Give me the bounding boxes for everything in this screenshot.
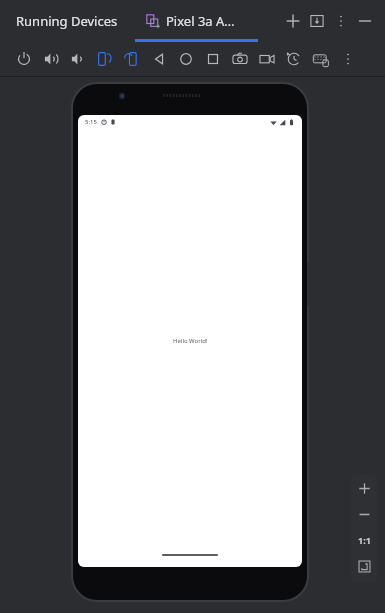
button[interactable]: Home — [172, 44, 199, 74]
button[interactable]: More options — [329, 9, 353, 33]
button[interactable]: Minimize to window — [305, 9, 329, 33]
button[interactable]: Hardware input — [307, 44, 334, 74]
button[interactable]: Record screen — [253, 44, 280, 74]
button[interactable]: Back — [145, 44, 172, 74]
staticText: Hello World! — [173, 337, 208, 345]
staticText: Running Devices — [16, 12, 118, 30]
staticText: 5:15 — [85, 118, 97, 126]
button[interactable]: 1:1 — [351, 527, 377, 553]
button[interactable]: Volume down — [64, 44, 91, 74]
staticText: 1:1 — [358, 534, 371, 546]
button[interactable]: Screenshot — [226, 44, 253, 74]
button[interactable]: Zoom in — [351, 475, 377, 501]
button[interactable]: History — [280, 44, 307, 74]
button[interactable]: Zoom out — [351, 501, 377, 527]
button[interactable]: Volume up — [37, 44, 64, 74]
staticText: Pixel 3a A… — [166, 12, 235, 30]
button[interactable]: Rotate left — [91, 44, 118, 74]
button[interactable]: Rotate right — [118, 44, 145, 74]
button[interactable]: Add device — [281, 9, 305, 33]
button[interactable]: Overview — [199, 44, 226, 74]
button[interactable]: Pixel 3a A… — [146, 12, 235, 30]
button[interactable]: Hide — [353, 9, 377, 33]
button[interactable]: Power — [10, 44, 37, 74]
button[interactable]: More — [334, 44, 361, 74]
button[interactable]: Fit to screen — [351, 553, 377, 579]
